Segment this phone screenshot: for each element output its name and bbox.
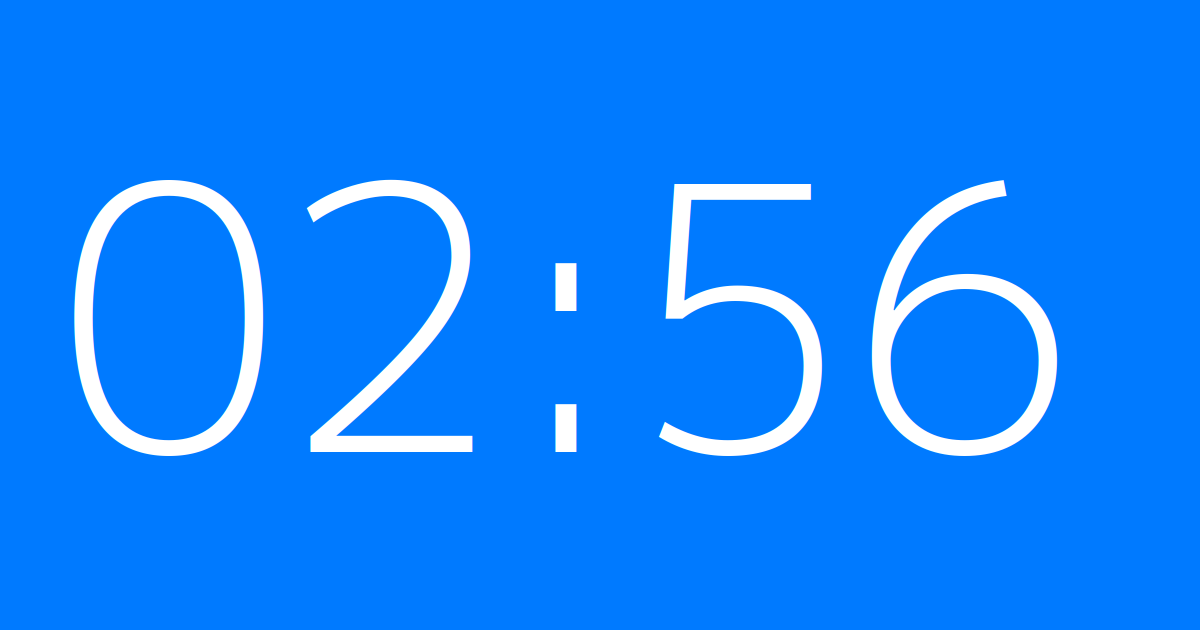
staticText: 02:56 bbox=[56, 56, 1075, 570]
button[interactable]: 02:56 remaining, tap to pause bbox=[0, 0, 1200, 630]
